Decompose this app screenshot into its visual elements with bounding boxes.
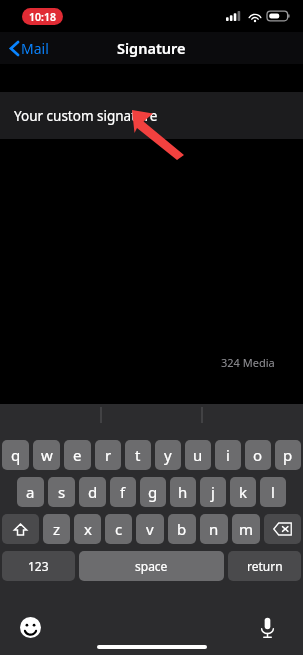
staticText: s [58, 482, 66, 502]
staticText: j [211, 482, 215, 502]
button[interactable]: b [168, 514, 196, 544]
staticText: q [11, 445, 21, 465]
staticText: m [239, 519, 254, 539]
staticText: i [226, 445, 230, 465]
button[interactable]: space [79, 551, 224, 581]
staticText: Your custom signature [14, 107, 158, 125]
button[interactable]: Your custom signature [0, 92, 303, 139]
button[interactable]: y [155, 440, 181, 470]
staticText: d [88, 482, 98, 502]
staticText: f [120, 482, 126, 502]
staticText: o [253, 445, 263, 465]
button[interactable]: 123 [2, 551, 75, 581]
staticText: Mail [21, 39, 49, 58]
button[interactable]: u [185, 440, 211, 470]
button[interactable]: j [200, 477, 226, 507]
button[interactable]: k [230, 477, 256, 507]
button[interactable]: f [110, 477, 136, 507]
button[interactable]: g [140, 477, 166, 507]
button[interactable]: a [17, 477, 44, 507]
button[interactable]: Dictation [249, 609, 285, 645]
button[interactable]: Shift [2, 514, 39, 544]
staticText: z [53, 519, 61, 539]
button[interactable]: Mail [0, 34, 59, 63]
staticText: n [209, 519, 219, 539]
button[interactable]: l [260, 477, 286, 507]
staticText: h [178, 482, 188, 502]
staticText: 123 [28, 558, 49, 574]
staticText: e [73, 445, 82, 465]
button[interactable]: q [2, 440, 29, 470]
button[interactable]: o [245, 440, 271, 470]
button[interactable]: m [232, 514, 260, 544]
button[interactable]: h [170, 477, 196, 507]
button[interactable]: r [95, 440, 121, 470]
staticText: 10:18 [29, 10, 56, 24]
staticText: b [177, 519, 187, 539]
button[interactable]: e [64, 440, 91, 470]
staticText: a [26, 482, 35, 502]
staticText: y [164, 445, 172, 465]
button[interactable]: s [48, 477, 75, 507]
staticText: return [247, 558, 283, 574]
staticText: w [41, 445, 53, 465]
staticText: g [148, 482, 158, 502]
button[interactable]: d [79, 477, 106, 507]
button[interactable]: z [43, 514, 70, 544]
staticText: v [146, 519, 154, 539]
staticText: u [193, 445, 203, 465]
button[interactable]: return [228, 551, 301, 581]
staticText: k [239, 482, 248, 502]
button[interactable]: t [125, 440, 151, 470]
staticText: Signature [117, 38, 186, 58]
staticText: p [283, 445, 293, 465]
button[interactable]: Emoji keyboard [12, 609, 48, 645]
button[interactable]: w [33, 440, 60, 470]
staticText: l [271, 482, 275, 502]
button[interactable]: x [74, 514, 101, 544]
button[interactable]: p [275, 440, 301, 470]
staticText: c [115, 519, 123, 539]
button[interactable]: c [105, 514, 132, 544]
staticText: 324 Media [221, 355, 275, 370]
button[interactable]: n [200, 514, 228, 544]
button[interactable]: i [215, 440, 241, 470]
staticText: r [105, 445, 112, 465]
button[interactable]: Backspace [264, 514, 301, 544]
staticText: t [135, 445, 141, 465]
staticText: x [84, 519, 92, 539]
button[interactable]: v [136, 514, 164, 544]
staticText: space [135, 558, 168, 574]
